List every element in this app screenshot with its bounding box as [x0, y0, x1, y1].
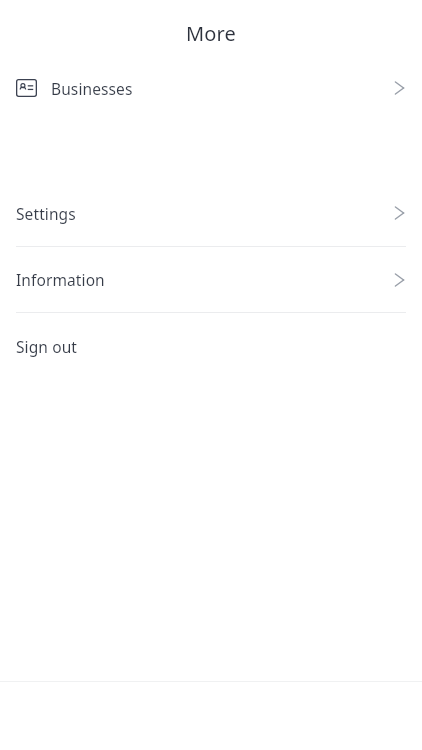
- button[interactable]: Settings: [0, 180, 422, 246]
- other: Open Businesses: [394, 78, 406, 98]
- button[interactable]: Businesses: [0, 66, 422, 110]
- staticText: Settings: [16, 203, 76, 224]
- button[interactable]: Sign out: [0, 313, 422, 379]
- other: Open Information: [394, 270, 406, 290]
- staticText: Sign out: [16, 336, 78, 357]
- staticText: Information: [16, 269, 105, 290]
- button[interactable]: Information: [0, 247, 422, 312]
- staticText: More: [186, 20, 236, 47]
- other: Open Settings: [394, 203, 406, 223]
- staticText: Businesses: [51, 78, 133, 99]
